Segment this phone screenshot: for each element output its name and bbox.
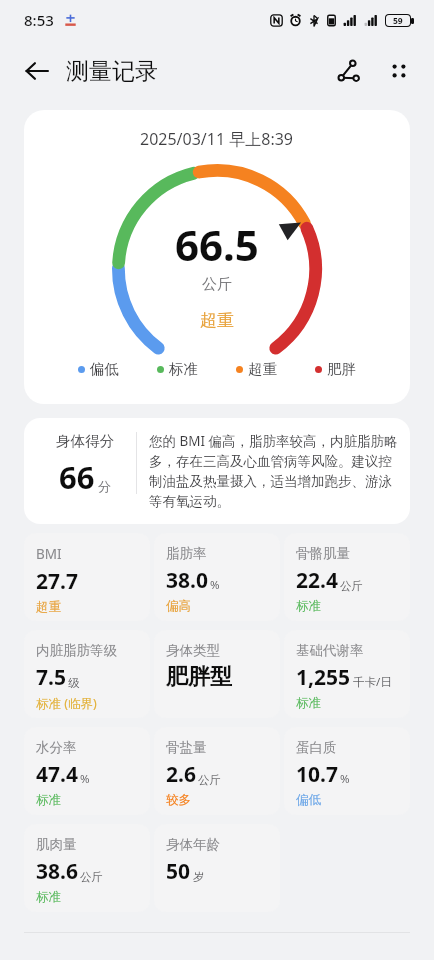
staticText: 标准 — [296, 598, 321, 614]
staticText: 8:53 — [24, 10, 54, 30]
staticText: 50 — [166, 857, 191, 886]
staticText: 水分率 — [36, 739, 77, 756]
staticText: 超重 — [36, 599, 61, 615]
staticText: % — [80, 771, 90, 787]
staticText: 66 — [59, 456, 95, 498]
staticText: 级 — [68, 676, 80, 690]
staticText: 肌肉量 — [36, 836, 77, 853]
staticText: 超重 — [200, 310, 234, 331]
staticText: 身体类型 — [166, 642, 220, 659]
button[interactable]: 水分率 — [24, 727, 150, 815]
button[interactable]: 身体年龄 — [154, 824, 280, 912]
staticText: 公斤 — [340, 579, 363, 593]
staticText: 公斤 — [202, 275, 232, 294]
staticText: 千卡/日 — [353, 674, 392, 690]
button[interactable]: More options — [382, 54, 416, 88]
staticText: 38.6 — [36, 857, 78, 886]
staticText: 超重 — [248, 360, 277, 378]
button[interactable]: Back — [18, 52, 56, 90]
button[interactable]: Share — [330, 53, 366, 89]
button[interactable]: 内脏脂肪等级 — [24, 630, 150, 718]
staticText: 内脏脂肪等级 — [36, 642, 117, 659]
staticText: 偏高 — [166, 598, 191, 614]
button[interactable]: BMI — [24, 533, 150, 621]
button[interactable]: 2025/03/11 早上8:39 — [24, 110, 410, 404]
staticText: 肥胖 — [327, 360, 356, 378]
staticText: 较多 — [166, 792, 191, 808]
staticText: 测量记录 — [66, 57, 158, 86]
staticText: 岁 — [193, 870, 205, 884]
staticText: 骨骼肌量 — [296, 545, 350, 562]
staticText: 22.4 — [296, 566, 338, 595]
staticText: 66.5 — [175, 216, 259, 273]
staticText: 标准 (临界) — [36, 695, 97, 712]
button[interactable]: 身体得分 — [24, 418, 410, 524]
button[interactable]: 身体类型 — [154, 630, 280, 718]
staticText: 47.4 — [36, 760, 78, 789]
staticText: 您的 BMI 偏高，脂肪率较高，内脏脂肪略多，存在三高及心血管病等风险。建议控制… — [149, 432, 398, 510]
staticText: 2025/03/11 早上8:39 — [140, 128, 294, 150]
staticText: 脂肪率 — [166, 545, 207, 562]
button[interactable]: 蛋白质 — [284, 727, 410, 815]
staticText: 2.6 — [166, 760, 196, 789]
button[interactable]: 骨盐量 — [154, 727, 280, 815]
staticText: 蛋白质 — [296, 739, 337, 756]
staticText: 肥胖型 — [166, 663, 232, 691]
button[interactable]: 脂肪率 — [154, 533, 280, 621]
staticText: 38.0 — [166, 566, 208, 595]
staticText: 标准 — [169, 360, 198, 378]
button[interactable]: 骨骼肌量 — [284, 533, 410, 621]
staticText: 10.7 — [296, 760, 338, 789]
staticText: 分 — [98, 478, 111, 494]
staticText: 标准 — [36, 792, 61, 808]
button[interactable]: 肌肉量 — [24, 824, 150, 912]
staticText: 身体得分 — [56, 432, 114, 450]
staticText: 基础代谢率 — [296, 642, 364, 659]
staticText: 骨盐量 — [166, 739, 207, 756]
staticText: 标准 — [36, 889, 61, 905]
staticText: 标准 — [296, 695, 321, 711]
staticText: 偏低 — [90, 360, 119, 378]
staticText: BMI — [36, 545, 62, 563]
staticText: 公斤 — [198, 773, 221, 787]
staticText: 身体年龄 — [166, 836, 220, 853]
staticText: 1,255 — [296, 663, 351, 692]
staticText: 7.5 — [36, 663, 66, 692]
staticText: 27.7 — [36, 567, 78, 596]
staticText: 59 — [393, 15, 403, 26]
button[interactable]: 基础代谢率 — [284, 630, 410, 718]
staticText: % — [340, 771, 350, 787]
staticText: 偏低 — [296, 792, 321, 808]
staticText: % — [210, 577, 220, 593]
staticText: 公斤 — [80, 870, 103, 884]
